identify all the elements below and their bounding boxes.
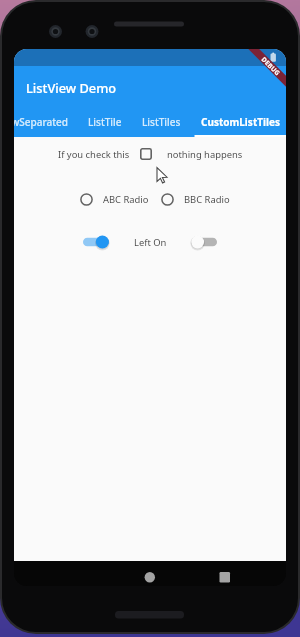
staticText: ListTiles xyxy=(142,115,181,129)
staticText: ListView Demo xyxy=(26,79,117,96)
staticText: Left On xyxy=(134,236,167,249)
staticText: nothing happens xyxy=(167,148,243,161)
button[interactable]: CustomListTiles xyxy=(191,106,286,137)
staticText: BBC Radio xyxy=(184,193,230,206)
staticText: RowSeparated xyxy=(14,115,68,129)
button[interactable]: RowSeparated xyxy=(14,106,78,137)
staticText: If you check this xyxy=(58,148,130,161)
button[interactable]: Switch off xyxy=(191,233,217,251)
button[interactable]: Checkbox xyxy=(136,144,156,164)
staticText: ListTile xyxy=(88,115,122,129)
button[interactable]: ListTiles xyxy=(132,106,191,137)
button[interactable]: Switch on xyxy=(83,233,109,251)
button[interactable]: ListTile xyxy=(78,106,132,137)
staticText: ABC Radio xyxy=(103,193,149,206)
button[interactable]: ABC Radio xyxy=(76,189,149,209)
button[interactable]: BBC Radio xyxy=(157,189,230,209)
staticText: CustomListTiles xyxy=(201,115,280,129)
